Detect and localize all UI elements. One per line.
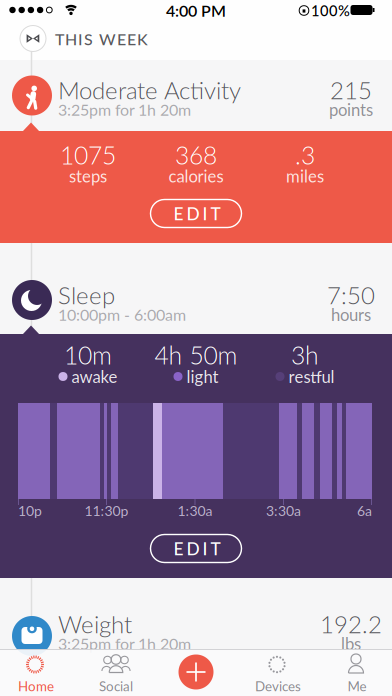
staticText: 3:25pm for 1h 20m [58, 634, 191, 653]
staticText: miles [286, 166, 324, 186]
staticText: 10p [18, 502, 42, 519]
staticText: Devices [255, 678, 301, 694]
staticText: restful [288, 366, 334, 386]
staticText: .3 [295, 140, 315, 170]
staticText: Social [99, 678, 133, 694]
staticText: 1075 [60, 140, 116, 170]
button[interactable]: Devices [242, 649, 314, 696]
button[interactable]: Social [80, 649, 152, 696]
button[interactable]: Sleep [0, 243, 392, 334]
staticText: 10:00pm - 6:00am [58, 305, 186, 324]
staticText: awake [71, 366, 117, 386]
staticText: Sleep [58, 281, 115, 309]
staticText: 11:30p [84, 502, 128, 519]
staticText: 7:50 [327, 281, 375, 309]
staticText: 10m [64, 340, 112, 370]
staticText: T H I S W E E K [55, 29, 148, 49]
staticText: steps [69, 166, 107, 186]
staticText: 215 [330, 76, 372, 104]
button[interactable]: E D I T [150, 534, 241, 562]
button[interactable]: T H I S W E E K [16, 19, 176, 59]
staticText: Moderate Activity [58, 76, 241, 104]
staticText: points [329, 99, 373, 119]
staticText: hours [331, 304, 371, 324]
staticText: lbs [341, 633, 361, 653]
staticText: 4:00 PM [166, 1, 226, 20]
staticText: light [186, 366, 218, 386]
button[interactable]: E D I T [150, 199, 241, 227]
staticText: E D I T [173, 203, 220, 224]
button[interactable]: Log [178, 654, 213, 689]
staticText: 3h [291, 340, 319, 370]
button[interactable]: Me [321, 649, 392, 696]
button[interactable]: Moderate Activity [0, 60, 392, 131]
staticText: 3:30a [266, 502, 301, 519]
staticText: 4h 50m [154, 340, 237, 370]
staticText: 100% [311, 2, 350, 19]
staticText: 3:25pm for 1h 20m [58, 100, 191, 119]
staticText: calories [168, 166, 223, 186]
staticText: 6a [357, 502, 372, 519]
staticText: 368 [175, 140, 217, 170]
staticText: Weight [58, 610, 132, 638]
button[interactable]: Weight [0, 578, 392, 670]
staticText: 192.2 [320, 610, 382, 638]
button[interactable]: Home [0, 649, 72, 696]
staticText: Me [347, 678, 366, 694]
staticText: Home [18, 678, 54, 694]
staticText: 1:30a [177, 502, 212, 519]
staticText: E D I T [173, 538, 220, 559]
